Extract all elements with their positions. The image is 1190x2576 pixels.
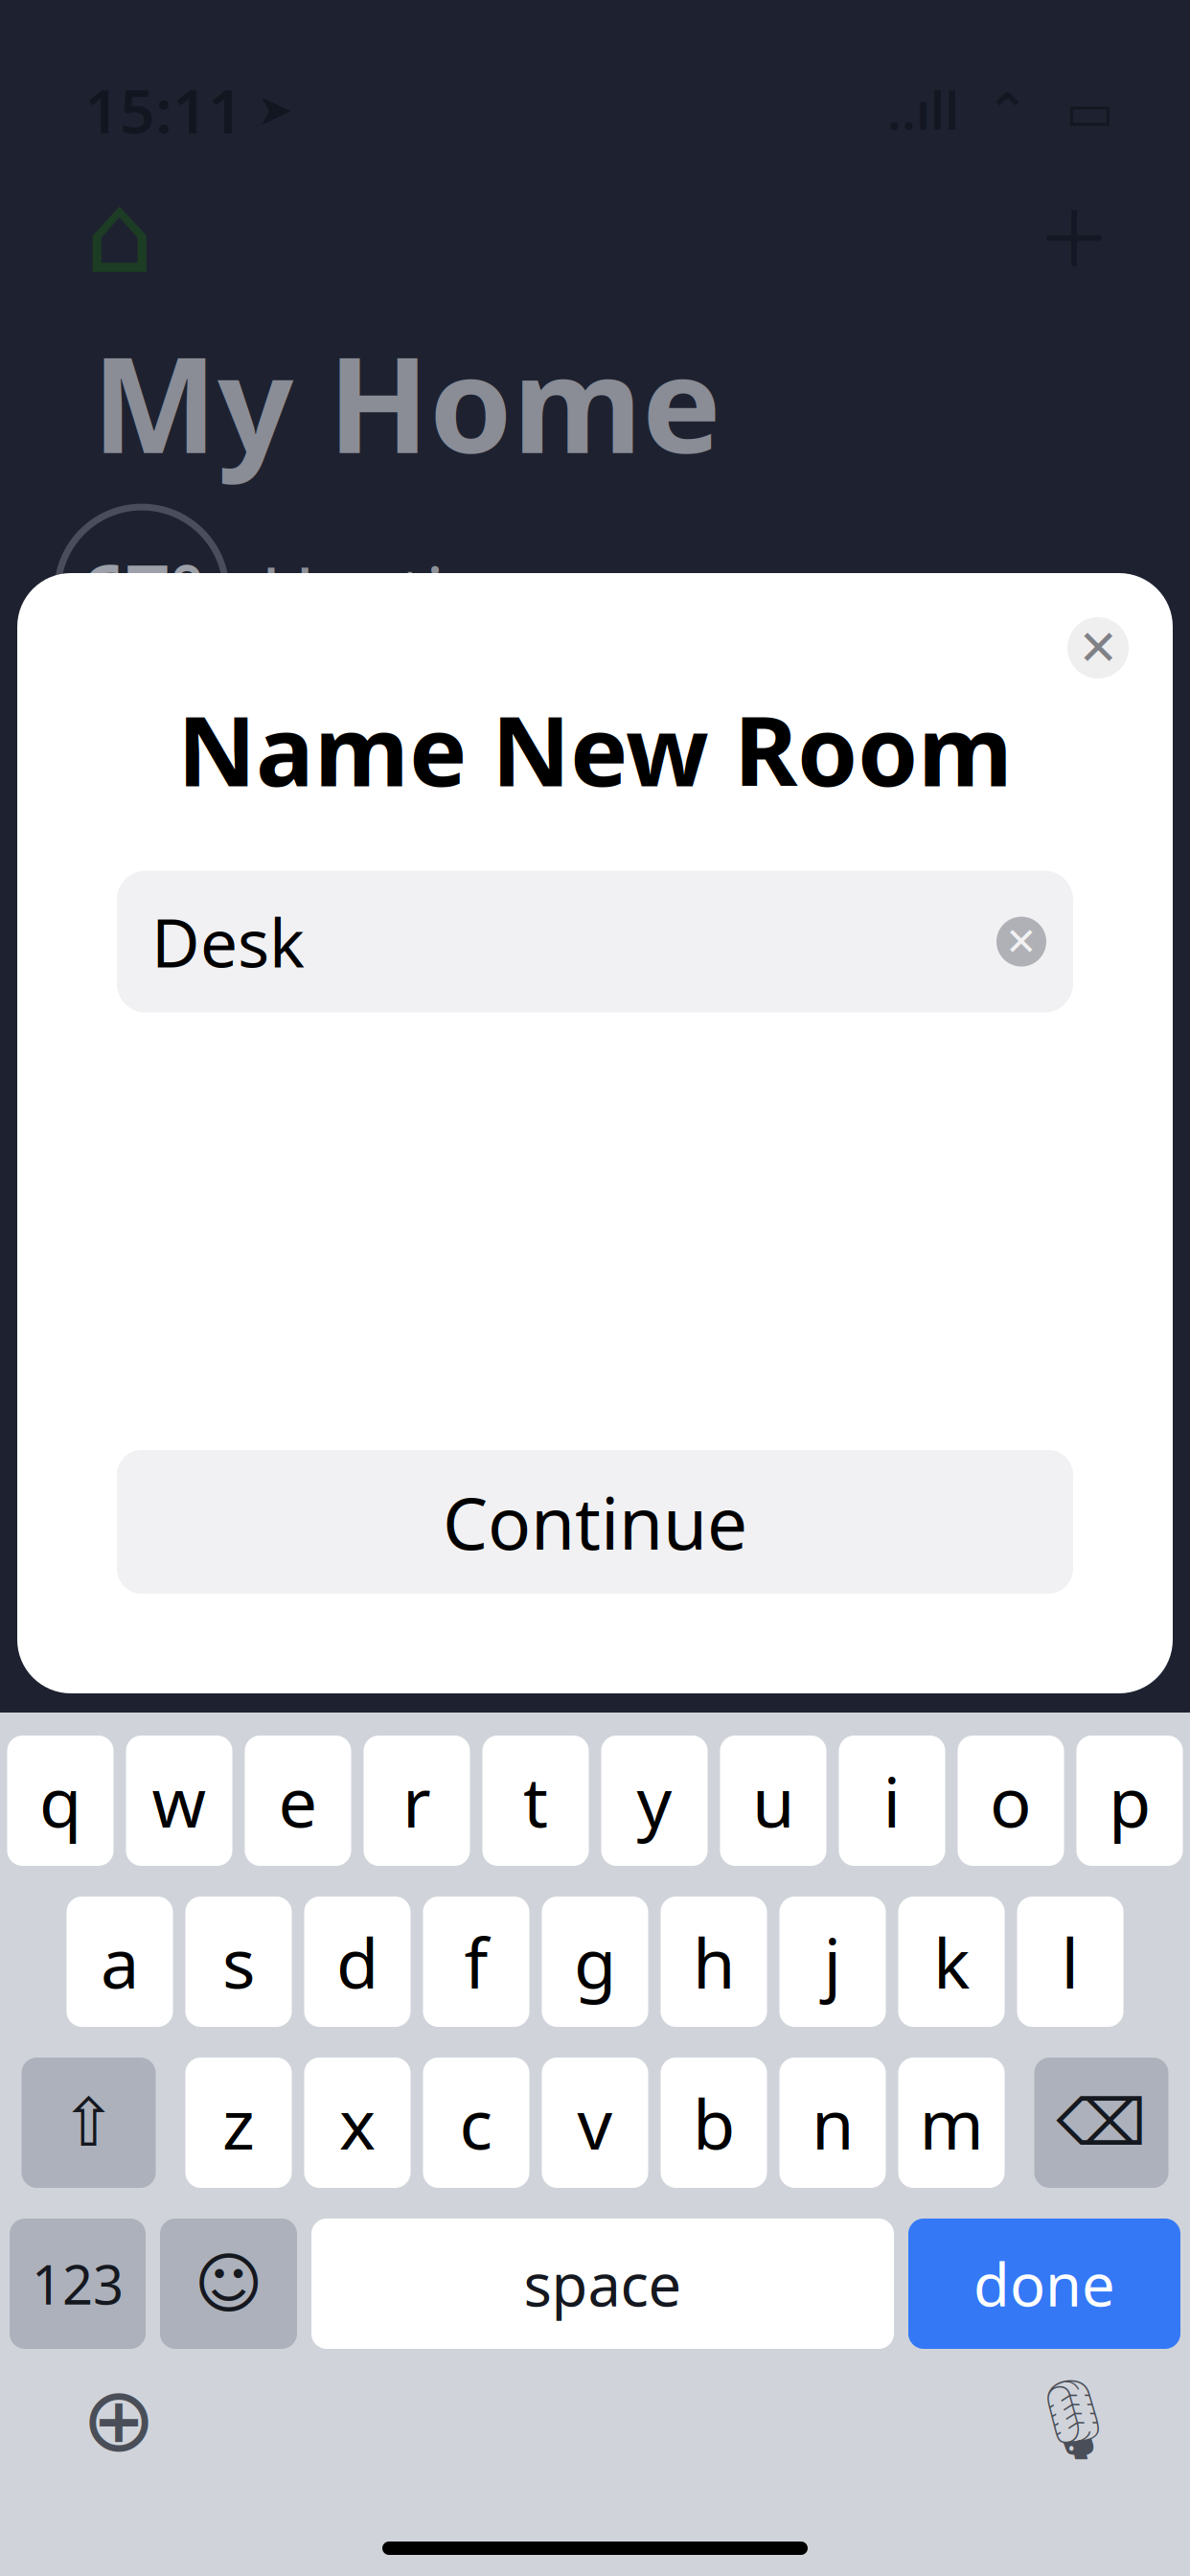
staticText: 15:11 xyxy=(84,69,243,150)
staticText: g xyxy=(574,1916,616,2008)
button[interactable]: Home xyxy=(67,181,172,287)
button[interactable]: m xyxy=(898,2058,1005,2188)
staticText: ☺ xyxy=(194,2246,263,2321)
button[interactable]: Close xyxy=(1067,617,1129,678)
staticText: space xyxy=(524,2245,682,2323)
button[interactable]: f xyxy=(423,1897,529,2027)
button[interactable]: x xyxy=(304,2058,411,2188)
staticText: a xyxy=(101,1916,139,2008)
button[interactable]: Change keyboard xyxy=(71,2372,167,2468)
staticText: ⇧ xyxy=(61,2085,116,2160)
staticText: j xyxy=(824,1916,842,2008)
staticText: x xyxy=(339,2077,376,2169)
staticText: ⌫ xyxy=(1056,2086,1146,2159)
button[interactable]: w xyxy=(126,1736,232,1866)
staticText: y xyxy=(637,1755,672,1847)
button[interactable]: i xyxy=(839,1736,945,1866)
staticText: n xyxy=(812,2077,854,2169)
staticText: s xyxy=(222,1916,255,2008)
staticText: ⊕ xyxy=(81,2369,156,2470)
staticText: c xyxy=(459,2077,493,2169)
staticText: z xyxy=(222,2077,255,2169)
staticText: ✕ xyxy=(1005,920,1038,963)
button[interactable]: 123 xyxy=(10,2219,146,2349)
staticText: o xyxy=(990,1755,1032,1847)
button[interactable]: Continue xyxy=(117,1450,1073,1594)
button[interactable]: y xyxy=(601,1736,708,1866)
button[interactable]: space xyxy=(311,2219,894,2349)
button[interactable]: b xyxy=(661,2058,767,2188)
staticText: Name New Room xyxy=(177,684,1013,813)
button[interactable]: h xyxy=(661,1897,767,2027)
staticText: ✕ xyxy=(1078,620,1118,675)
button[interactable]: Shift xyxy=(22,2058,156,2188)
staticText: 🎙 xyxy=(1023,2375,1123,2465)
staticText: k xyxy=(933,1916,970,2008)
button[interactable]: Clear text xyxy=(996,917,1046,967)
staticText: u xyxy=(752,1755,794,1847)
staticText: m xyxy=(919,2077,984,2169)
button[interactable]: Emoji xyxy=(160,2219,297,2349)
staticText: i xyxy=(883,1755,901,1847)
button[interactable]: r xyxy=(364,1736,470,1866)
button[interactable]: e xyxy=(245,1736,351,1866)
button[interactable]: z xyxy=(185,2058,292,2188)
staticText: e xyxy=(278,1755,318,1847)
staticText: w xyxy=(152,1755,206,1847)
button[interactable]: n xyxy=(779,2058,886,2188)
button[interactable]: j xyxy=(779,1897,886,2027)
button[interactable]: q xyxy=(7,1736,114,1866)
staticText: My Home xyxy=(92,313,721,490)
button[interactable]: t xyxy=(482,1736,589,1866)
button[interactable]: g xyxy=(542,1897,648,2027)
staticText: 67° xyxy=(80,539,204,644)
button[interactable]: s xyxy=(185,1897,292,2027)
staticText: Desk xyxy=(151,897,305,986)
button[interactable]: Dictation xyxy=(1025,2372,1121,2468)
staticText: p xyxy=(1109,1755,1151,1847)
staticText: b xyxy=(693,2077,735,2169)
staticText: h xyxy=(693,1916,735,2008)
staticText: 123 xyxy=(32,2248,124,2319)
button[interactable]: done xyxy=(908,2219,1180,2349)
button[interactable]: u xyxy=(720,1736,826,1866)
button[interactable]: a xyxy=(67,1897,173,2027)
staticText: ..ıll ⌃ ▭ xyxy=(887,76,1113,144)
staticText: ⌂ xyxy=(85,171,155,296)
button[interactable]: c xyxy=(423,2058,529,2188)
button[interactable]: d xyxy=(304,1897,411,2027)
button[interactable]: v xyxy=(542,2058,648,2188)
staticText: Continue xyxy=(443,1474,747,1569)
button[interactable]: l xyxy=(1017,1897,1123,2027)
button[interactable]: o xyxy=(958,1736,1064,1866)
staticText: done xyxy=(973,2245,1115,2323)
staticText: t xyxy=(523,1755,548,1847)
staticText: f xyxy=(464,1916,488,2008)
staticText: l xyxy=(1061,1916,1079,2008)
staticText: q xyxy=(39,1755,81,1847)
staticText: ➤ xyxy=(243,85,293,134)
button[interactable]: k xyxy=(898,1897,1005,2027)
staticText: d xyxy=(336,1916,378,2008)
staticText: Heating xyxy=(261,542,537,641)
button[interactable]: Delete xyxy=(1034,2058,1168,2188)
staticText: r xyxy=(402,1755,431,1847)
staticText: v xyxy=(577,2077,613,2169)
button[interactable]: p xyxy=(1076,1736,1183,1866)
